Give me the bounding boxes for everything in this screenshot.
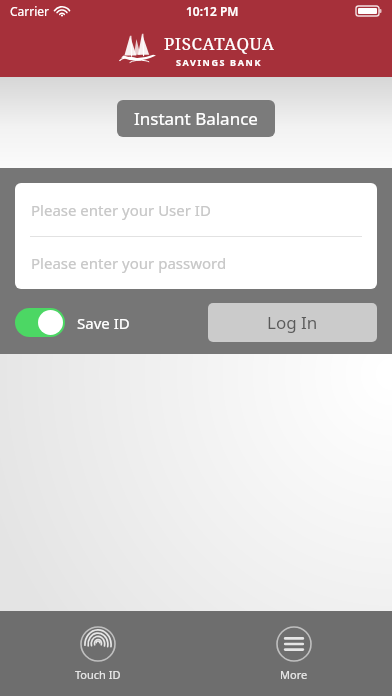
button[interactable]: Log In <box>208 303 377 342</box>
button[interactable]: Touch ID <box>63 622 133 686</box>
staticText: PISCATAQUA <box>164 32 275 55</box>
staticText: Please enter your User ID <box>31 200 211 220</box>
button[interactable]: Please enter your password <box>15 237 377 289</box>
staticText: SAVINGS BANK <box>176 56 263 68</box>
staticText: More <box>280 667 308 682</box>
staticText: Touch ID <box>75 667 121 682</box>
staticText: Save ID <box>77 313 130 333</box>
staticText: Log In <box>267 311 318 334</box>
button[interactable]: Save ID <box>15 308 130 337</box>
staticText: Please enter your password <box>31 253 227 273</box>
button[interactable]: Please enter your User ID <box>15 183 377 236</box>
button[interactable]: Instant Balance <box>117 100 275 137</box>
staticText: Instant Balance <box>134 107 258 130</box>
staticText: 10:12 PM <box>186 3 239 19</box>
button[interactable]: More <box>264 622 324 686</box>
staticText: Carrier <box>10 3 50 19</box>
